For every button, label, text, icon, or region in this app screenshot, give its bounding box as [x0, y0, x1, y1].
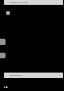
button[interactable]: Maintenance	[4, 72, 63, 78]
staticText: Maintenance	[9, 74, 23, 77]
button[interactable]	[0, 39, 6, 45]
button[interactable]: Changing settings	[4, 0, 63, 5]
staticText: Changing settings	[9, 1, 28, 4]
button[interactable]: App icon	[6, 11, 10, 15]
button[interactable]	[0, 53, 6, 58]
